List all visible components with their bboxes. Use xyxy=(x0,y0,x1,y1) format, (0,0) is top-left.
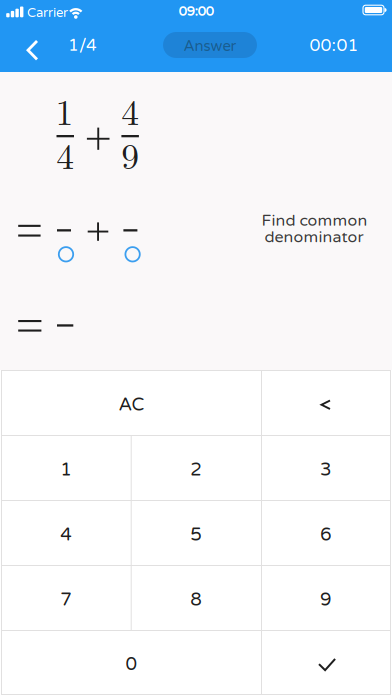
staticText: 4 xyxy=(56,129,74,179)
staticText: Carrier xyxy=(27,5,68,21)
staticText: 1/4 xyxy=(68,35,97,55)
button[interactable]: Submit xyxy=(263,633,391,696)
button[interactable]: 6 xyxy=(262,501,390,565)
button[interactable]: 2 xyxy=(132,436,261,500)
button[interactable]: 5 xyxy=(132,501,261,565)
staticText: 09:00 xyxy=(178,3,213,20)
button[interactable]: 7 xyxy=(2,566,131,630)
staticText: 0 xyxy=(125,653,137,675)
button[interactable]: Backspace xyxy=(262,373,390,437)
staticText: 5 xyxy=(190,524,202,546)
staticText: 1 xyxy=(60,459,72,481)
button[interactable]: 1 xyxy=(2,436,131,500)
button[interactable]: Back xyxy=(10,28,54,72)
staticText: 7 xyxy=(60,589,72,611)
button[interactable]: 8 xyxy=(132,566,261,630)
staticText: Find common xyxy=(261,211,367,230)
staticText: 1 xyxy=(55,85,73,135)
button[interactable]: Answer xyxy=(163,32,257,58)
staticText: denominator xyxy=(264,228,363,247)
staticText: Answer xyxy=(183,37,236,55)
button[interactable]: 4 xyxy=(2,501,131,565)
staticText: 3 xyxy=(320,459,332,481)
staticText: 9 xyxy=(121,129,139,179)
staticText: 2 xyxy=(190,459,202,481)
staticText: 6 xyxy=(320,524,332,546)
staticText: 9 xyxy=(320,589,332,611)
button[interactable]: 0 xyxy=(2,631,261,694)
staticText: 4 xyxy=(121,85,139,135)
staticText: AC xyxy=(118,394,144,416)
staticText: 4 xyxy=(60,524,72,546)
staticText: 8 xyxy=(190,589,202,611)
staticText: 00:01 xyxy=(309,35,358,56)
button[interactable]: AC xyxy=(2,371,261,435)
button[interactable]: 3 xyxy=(262,436,390,500)
button[interactable]: 9 xyxy=(262,566,390,630)
